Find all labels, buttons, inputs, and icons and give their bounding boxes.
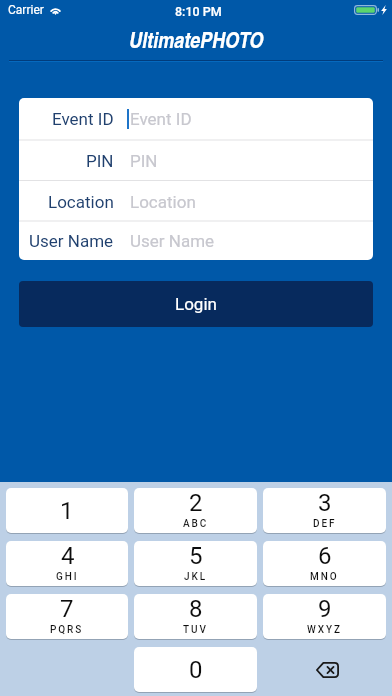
button[interactable]: Event ID: [19, 98, 373, 140]
staticText: 8:10 PM: [175, 4, 222, 19]
staticText: 3: [318, 489, 332, 517]
button[interactable]: PIN: [19, 140, 373, 181]
staticText: Carrier: [8, 3, 44, 17]
staticText: Event ID: [52, 109, 114, 129]
staticText: GHI: [56, 571, 79, 583]
staticText: Location: [48, 192, 114, 212]
staticText: ABC: [183, 518, 209, 530]
button[interactable]: 6: [263, 541, 386, 587]
staticText: 9: [318, 595, 332, 623]
button[interactable]: 7: [6, 594, 128, 640]
button[interactable]: 0: [134, 647, 257, 693]
staticText: PIN: [86, 151, 114, 171]
staticText: UltimatePHOTO: [129, 24, 264, 55]
button[interactable]: 5: [134, 541, 257, 587]
staticText: JKL: [184, 571, 207, 583]
staticText: 8: [189, 595, 203, 623]
staticText: Login: [175, 294, 217, 314]
staticText: DEF: [313, 518, 337, 530]
button[interactable]: 8: [134, 594, 257, 640]
button[interactable]: User Name: [19, 222, 373, 260]
staticText: Event ID: [130, 109, 192, 129]
button[interactable]: Login: [19, 281, 373, 327]
staticText: 2: [189, 489, 203, 517]
staticText: 5: [189, 542, 203, 570]
staticText: 7: [60, 595, 74, 623]
staticText: Location: [130, 192, 196, 212]
staticText: MNO: [310, 571, 339, 583]
staticText: WXYZ: [307, 624, 342, 636]
button[interactable]: Location: [19, 181, 373, 222]
staticText: PIN: [130, 151, 158, 171]
button[interactable]: Backspace: [263, 647, 386, 692]
button[interactable]: 2: [134, 488, 257, 534]
staticText: TUV: [183, 624, 208, 636]
staticText: User Name: [29, 231, 114, 251]
staticText: 1: [60, 497, 74, 525]
button[interactable]: 9: [263, 594, 386, 640]
button[interactable]: 1: [6, 488, 128, 534]
button[interactable]: 3: [263, 488, 386, 534]
button[interactable]: 4: [6, 541, 128, 587]
staticText: 0: [189, 656, 203, 684]
staticText: PQRS: [50, 624, 84, 636]
staticText: 6: [318, 542, 332, 570]
staticText: 4: [61, 542, 75, 570]
staticText: User Name: [130, 231, 215, 251]
